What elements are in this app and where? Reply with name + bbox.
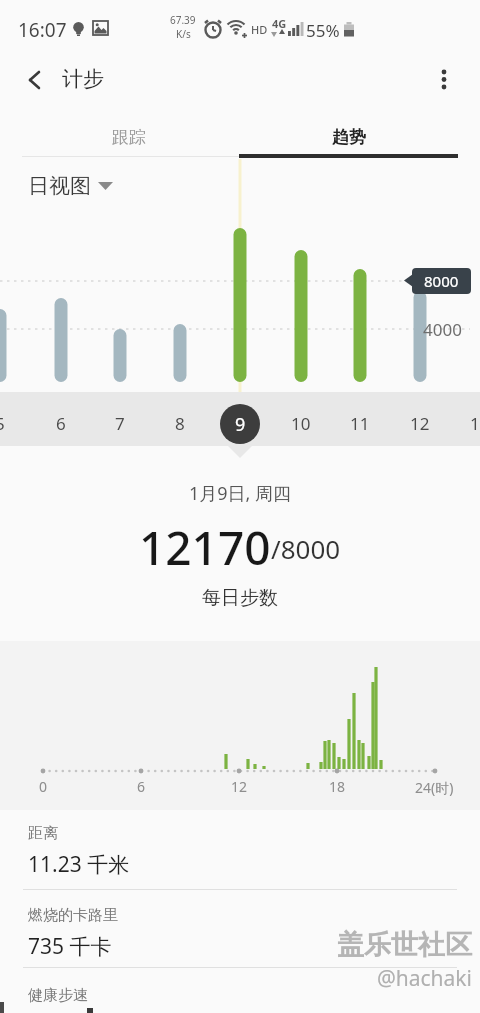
- button[interactable]: 6: [36, 396, 86, 450]
- staticText: 5: [0, 412, 5, 435]
- staticText: 8: [175, 412, 185, 435]
- staticText: 距离: [28, 824, 58, 843]
- button[interactable]: 13: [455, 396, 480, 450]
- button[interactable]: 距离: [0, 824, 480, 879]
- button[interactable]: 10: [276, 396, 326, 450]
- button[interactable]: 燃烧的卡路里: [0, 906, 480, 961]
- button[interactable]: [426, 63, 462, 99]
- staticText: 12170: [139, 516, 271, 572]
- staticText: 13: [470, 412, 480, 435]
- staticText: 6: [56, 412, 66, 435]
- staticText: 24(时): [415, 778, 454, 797]
- button[interactable]: 12: [395, 396, 445, 450]
- button[interactable]: 8: [155, 396, 205, 450]
- staticText: @hachaki: [0, 964, 472, 993]
- staticText: 跟踪: [112, 127, 146, 148]
- staticText: 趋势: [332, 127, 366, 148]
- staticText: /8000: [271, 531, 341, 566]
- staticText: 11: [350, 412, 370, 435]
- staticText: HD: [251, 22, 268, 37]
- button[interactable]: 9: [220, 404, 260, 444]
- staticText: 18: [329, 777, 346, 796]
- staticText: 12: [410, 412, 430, 435]
- button[interactable]: [16, 64, 52, 100]
- staticText: K/s: [176, 27, 191, 41]
- staticText: 0: [39, 777, 48, 796]
- staticText: 735 千卡: [28, 932, 112, 961]
- button[interactable]: 7: [95, 396, 145, 450]
- staticText: 日视图: [28, 173, 91, 199]
- staticText: 7: [115, 412, 125, 435]
- button[interactable]: 日视图: [28, 170, 113, 202]
- staticText: 67.39: [170, 13, 196, 27]
- staticText: 计步: [62, 66, 104, 92]
- button[interactable]: 5: [0, 396, 25, 450]
- button[interactable]: 跟踪: [18, 106, 240, 158]
- staticText: 每日步数: [0, 586, 480, 610]
- staticText: 16:07: [18, 17, 67, 43]
- staticText: 55%: [306, 19, 340, 42]
- button[interactable]: 11: [335, 396, 385, 450]
- button[interactable]: 健康步速: [0, 986, 480, 1005]
- staticText: 8000: [424, 271, 459, 291]
- staticText: 6: [137, 777, 146, 796]
- staticText: 4000: [423, 318, 462, 340]
- staticText: 健康步速: [28, 986, 88, 1005]
- staticText: 12: [231, 777, 248, 796]
- button[interactable]: 趋势: [239, 106, 458, 158]
- staticText: 9: [235, 412, 246, 437]
- staticText: 1月9日, 周四: [0, 481, 480, 506]
- staticText: 4G: [272, 16, 287, 31]
- staticText: 11.23 千米: [28, 850, 130, 879]
- staticText: 10: [291, 412, 311, 435]
- staticText: 燃烧的卡路里: [28, 906, 118, 925]
- staticText: 盖乐世社区: [0, 928, 472, 962]
